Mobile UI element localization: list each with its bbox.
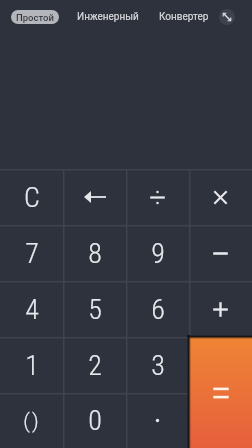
staticText: () bbox=[23, 409, 41, 433]
staticText: 4 bbox=[25, 293, 39, 326]
staticText: 1 bbox=[25, 349, 39, 382]
button[interactable]: Простой bbox=[11, 10, 59, 24]
button[interactable]: Expand bbox=[219, 9, 235, 25]
staticText: Конвертер bbox=[159, 11, 209, 23]
staticText: 7 bbox=[25, 237, 39, 270]
staticText: 3 bbox=[151, 349, 165, 382]
button[interactable]: () bbox=[0, 393, 63, 448]
button[interactable]: Equals bbox=[189, 337, 252, 448]
button[interactable]: Конвертер bbox=[150, 0, 218, 33]
staticText: 0 bbox=[88, 404, 102, 437]
button[interactable]: 2 bbox=[63, 337, 126, 393]
button[interactable]: 1 bbox=[0, 337, 63, 393]
staticText: 2 bbox=[88, 349, 102, 382]
button[interactable]: Multiply bbox=[189, 169, 252, 225]
button[interactable]: 8 bbox=[63, 225, 126, 281]
button[interactable]: Инженерный bbox=[59, 0, 150, 33]
button[interactable]: 4 bbox=[0, 281, 63, 337]
staticText: Инженерный bbox=[77, 11, 139, 23]
button[interactable]: 5 bbox=[63, 281, 126, 337]
button[interactable]: Divide bbox=[126, 169, 189, 225]
button[interactable]: 0 bbox=[63, 393, 126, 448]
button[interactable]: 3 bbox=[126, 337, 189, 393]
staticText: 9 bbox=[151, 237, 165, 270]
button[interactable]: Backspace bbox=[63, 169, 126, 225]
staticText: C bbox=[24, 181, 40, 214]
button[interactable]: C bbox=[0, 169, 63, 225]
staticText: Простой bbox=[16, 12, 54, 23]
staticText: 6 bbox=[151, 293, 165, 326]
button[interactable]: 7 bbox=[0, 225, 63, 281]
button[interactable]: Decimal point bbox=[126, 393, 189, 448]
staticText: 8 bbox=[88, 237, 102, 270]
button[interactable]: 6 bbox=[126, 281, 189, 337]
button[interactable]: Minus bbox=[189, 225, 252, 281]
staticText: 5 bbox=[88, 293, 102, 326]
button[interactable]: Plus bbox=[189, 281, 252, 337]
button[interactable]: 9 bbox=[126, 225, 189, 281]
